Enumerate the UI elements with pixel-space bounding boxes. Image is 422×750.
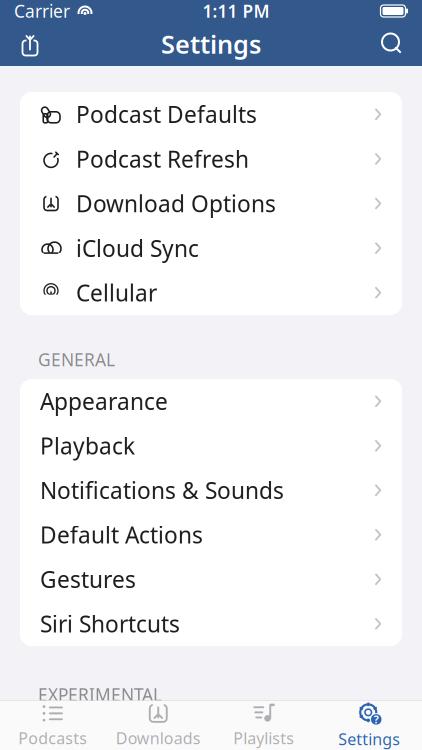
- button[interactable]: Playlists: [211, 700, 316, 750]
- button[interactable]: Podcasts: [0, 700, 105, 750]
- button[interactable]: Gestures: [20, 557, 402, 601]
- staticText: Playback: [40, 431, 135, 461]
- staticText: ?: [374, 712, 379, 726]
- staticText: Podcast Refresh: [76, 144, 249, 174]
- button[interactable]: Cellular: [20, 270, 402, 315]
- button[interactable]: ?: [316, 700, 422, 750]
- staticText: Download Options: [76, 188, 276, 218]
- staticText: Podcast Defaults: [76, 99, 257, 129]
- staticText: 1:11 PM: [202, 0, 269, 22]
- staticText: Carrier: [14, 0, 70, 22]
- staticText: Notifications & Sounds: [40, 475, 284, 505]
- button[interactable]: Podcast Refresh: [20, 137, 402, 181]
- button[interactable]: Downloads: [105, 700, 211, 750]
- staticText: Podcasts: [18, 727, 87, 749]
- button[interactable]: Download Options: [20, 181, 402, 226]
- button[interactable]: iCloud Sync: [20, 226, 402, 270]
- staticText: Cellular: [76, 278, 157, 308]
- staticText: GENERAL: [38, 348, 115, 371]
- staticText: Labs: [40, 721, 90, 750]
- button[interactable]: Appearance: [20, 379, 402, 423]
- button[interactable]: Siri Shortcuts: [20, 601, 402, 646]
- button[interactable]: Labs: [20, 714, 402, 750]
- staticText: iCloud Sync: [76, 233, 199, 263]
- button[interactable]: Podcast Defaults: [20, 92, 402, 137]
- staticText: Siri Shortcuts: [40, 609, 180, 639]
- button[interactable]: Playback: [20, 423, 402, 468]
- button[interactable]: Search: [370, 22, 414, 66]
- staticText: Default Actions: [40, 520, 203, 550]
- staticText: Settings: [161, 27, 261, 61]
- button[interactable]: Notifications & Sounds: [20, 468, 402, 512]
- button[interactable]: Share: [8, 22, 52, 66]
- staticText: Downloads: [116, 727, 201, 749]
- staticText: Appearance: [40, 386, 168, 416]
- staticText: Gestures: [40, 564, 136, 594]
- button[interactable]: Default Actions: [20, 512, 402, 557]
- staticText: Settings: [338, 728, 400, 750]
- staticText: Playlists: [233, 727, 294, 749]
- staticText: EXPERIMENTAL: [38, 683, 162, 706]
